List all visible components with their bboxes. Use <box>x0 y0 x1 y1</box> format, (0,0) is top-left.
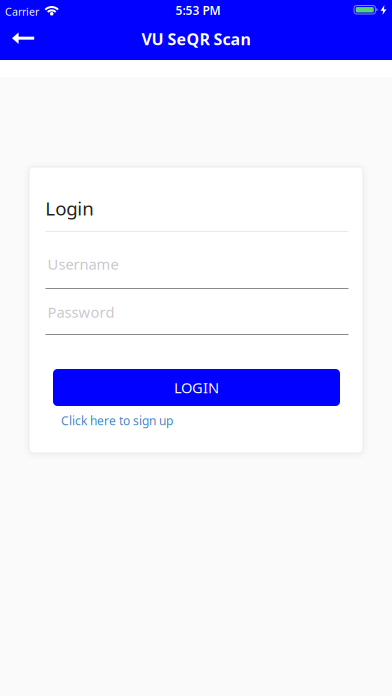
button[interactable]: Password <box>45 300 348 335</box>
staticText: 5:53 PM <box>175 2 220 18</box>
button[interactable]: LOGIN <box>53 369 340 406</box>
staticText: Click here to sign up <box>61 413 173 429</box>
staticText: LOGIN <box>174 378 219 397</box>
staticText: Login <box>45 196 94 221</box>
staticText: Password <box>47 302 114 322</box>
button[interactable]: Click here to sign up <box>61 413 173 429</box>
button[interactable] <box>0 20 44 56</box>
staticText: VU SeQR Scan <box>141 28 250 50</box>
button[interactable]: Username <box>45 252 348 289</box>
staticText: Username <box>47 254 118 274</box>
staticText: Carrier <box>5 5 39 19</box>
